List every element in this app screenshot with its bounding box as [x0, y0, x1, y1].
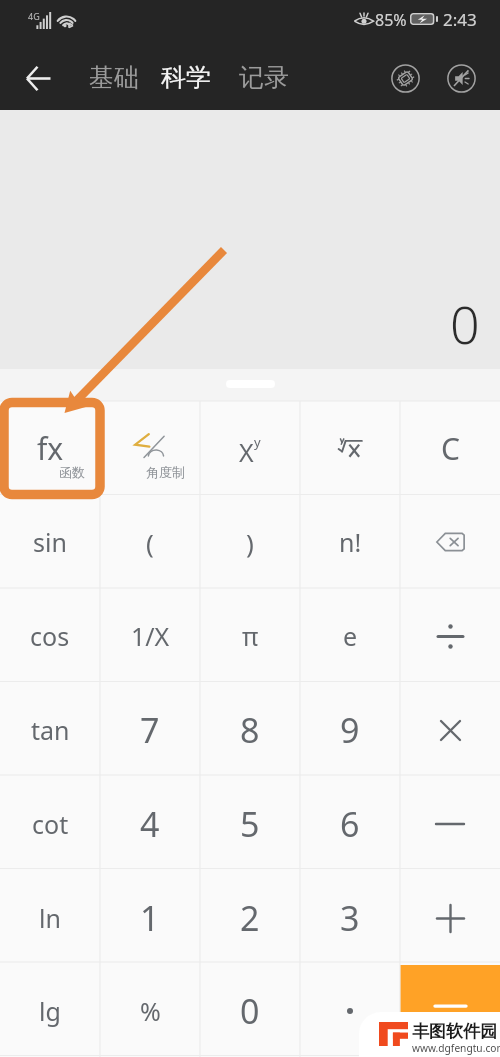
staticText: X	[239, 435, 254, 469]
staticText: 丰图软件园	[412, 1021, 497, 1042]
button[interactable]: 8	[200, 683, 300, 777]
staticText: 科学	[161, 62, 211, 93]
button[interactable]: Theme	[384, 57, 426, 99]
button[interactable]: Decimal point	[300, 965, 400, 1057]
button[interactable]: 5	[200, 777, 300, 871]
button[interactable]: %	[100, 965, 200, 1057]
button[interactable]: sin	[0, 495, 100, 589]
staticText: 1	[140, 895, 160, 941]
staticText: 9	[340, 707, 360, 753]
button[interactable]: 7	[100, 683, 200, 777]
staticText: 7	[140, 707, 160, 753]
button[interactable]: 角度制	[100, 401, 200, 495]
button[interactable]: fx	[0, 401, 100, 495]
staticText: %	[140, 994, 161, 1028]
staticText: tan	[31, 713, 70, 747]
button[interactable]: Divide	[400, 589, 500, 683]
staticText: e	[343, 619, 358, 653]
staticText: 6	[340, 801, 360, 847]
button[interactable]: Mute sound	[440, 57, 482, 99]
staticText: 函数	[59, 464, 85, 480]
staticText: π	[242, 619, 259, 653]
staticText: 0	[450, 288, 480, 359]
staticText: 5	[240, 801, 260, 847]
staticText: C	[441, 428, 460, 469]
staticText: 2:43	[443, 8, 477, 31]
button[interactable]: 科学	[155, 53, 217, 102]
button[interactable]: e	[300, 589, 400, 683]
button[interactable]: cos	[0, 589, 100, 683]
button[interactable]: Add	[400, 871, 500, 965]
staticText: (	[146, 525, 154, 560]
button[interactable]: n!	[300, 495, 400, 589]
button[interactable]: y-th root of x	[300, 401, 400, 495]
button[interactable]: 6	[300, 777, 400, 871]
button[interactable]: 0	[200, 965, 300, 1057]
staticText: 8	[240, 707, 260, 753]
button[interactable]: cot	[0, 777, 100, 871]
staticText: 1/X	[131, 619, 170, 653]
staticText: 基础	[89, 62, 139, 93]
staticText: 记录	[239, 62, 289, 93]
staticText: )	[246, 525, 254, 560]
button[interactable]: x to the power of y	[200, 401, 300, 495]
button[interactable]: Subtract	[400, 777, 500, 871]
button[interactable]: Multiply	[400, 683, 500, 777]
staticText: 0	[240, 988, 260, 1034]
staticText: 角度制	[146, 464, 185, 480]
button[interactable]: 基础	[83, 53, 145, 102]
button[interactable]: )	[200, 495, 300, 589]
button[interactable]: ln	[0, 871, 100, 965]
button[interactable]: (	[100, 495, 200, 589]
staticText: ln	[39, 901, 61, 935]
staticText: www.dgfengtu.com	[412, 1041, 500, 1055]
button[interactable]: Equals	[400, 965, 500, 1057]
staticText: 85%	[375, 9, 407, 31]
button[interactable]: π	[200, 589, 300, 683]
button[interactable]: 1/X	[100, 589, 200, 683]
staticText: y	[254, 433, 261, 451]
button[interactable]: 9	[300, 683, 400, 777]
button[interactable]: 4	[100, 777, 200, 871]
staticText: cot	[32, 807, 69, 841]
button[interactable]: 记录	[233, 53, 295, 102]
staticText: 4	[140, 801, 160, 847]
staticText: cos	[30, 619, 70, 653]
button[interactable]: tan	[0, 683, 100, 777]
button[interactable]: Backspace	[400, 495, 500, 589]
staticText: 2	[240, 895, 260, 941]
button[interactable]: 1	[100, 871, 200, 965]
staticText: fx	[37, 428, 64, 469]
staticText: 4G	[28, 10, 40, 22]
staticText: 3	[340, 895, 360, 941]
staticText: n!	[339, 525, 362, 559]
button[interactable]: C	[400, 401, 500, 495]
button[interactable]: 2	[200, 871, 300, 965]
button[interactable]: 3	[300, 871, 400, 965]
button[interactable]: lg	[0, 965, 100, 1057]
staticText: lg	[39, 994, 61, 1028]
button[interactable]: Back	[14, 54, 62, 102]
staticText: sin	[33, 525, 67, 559]
